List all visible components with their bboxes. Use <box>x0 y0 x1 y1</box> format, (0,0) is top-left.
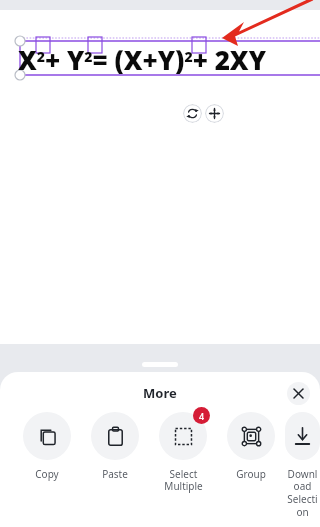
button[interactable]: Select Multiple <box>149 412 217 493</box>
staticText: 4 <box>199 410 205 422</box>
staticText: Group <box>236 467 266 481</box>
staticText: Paste <box>102 467 128 481</box>
button[interactable]: Rotate <box>183 104 202 123</box>
button[interactable]: Move <box>205 104 224 123</box>
staticText: More <box>143 384 177 402</box>
staticText: X2+ Y2= (X+Y)2+ 2XY <box>18 42 266 77</box>
button[interactable]: Copy <box>13 412 81 481</box>
button[interactable]: Paste <box>81 412 149 481</box>
button[interactable]: Download Selection <box>285 412 320 519</box>
button[interactable]: Group <box>217 412 285 481</box>
staticText: Copy <box>35 467 59 481</box>
staticText: Download Selection <box>285 467 320 519</box>
staticText: Select Multiple <box>164 467 203 493</box>
button[interactable]: Close <box>287 382 310 405</box>
